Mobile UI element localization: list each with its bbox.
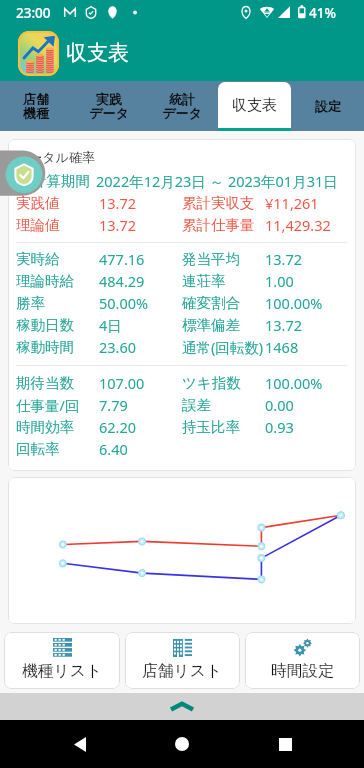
staticText: 確変割合: [182, 294, 240, 312]
staticText: 店舗リスト: [142, 661, 223, 681]
staticText: 1468: [265, 337, 299, 357]
staticText: 機種リスト: [22, 661, 103, 681]
staticText: 107.00: [99, 373, 145, 393]
staticText: 設定: [315, 98, 341, 114]
staticText: 理論値: [16, 216, 60, 234]
staticText: 実践 データ: [89, 91, 129, 122]
staticText: 通常(回転数): [182, 337, 264, 357]
staticText: 13.72: [99, 193, 137, 213]
staticText: 発当平均: [182, 250, 240, 268]
staticText: 実時給: [16, 250, 60, 268]
staticText: 計算期間: [32, 172, 90, 190]
staticText: 100.00%: [265, 373, 323, 393]
button[interactable]: 機種リスト: [4, 632, 120, 689]
staticText: 13.72: [265, 249, 303, 269]
staticText: 収支表: [232, 96, 277, 115]
staticText: 誤差: [182, 396, 211, 414]
staticText: 回転率: [16, 440, 60, 458]
button[interactable]: Recent apps: [262, 721, 308, 767]
staticText: 持玉比率: [182, 418, 240, 436]
staticText: 13.72: [99, 215, 137, 235]
button[interactable]: Home: [159, 721, 205, 767]
staticText: 時間設定: [271, 661, 335, 681]
staticText: 累計仕事量: [182, 216, 255, 234]
staticText: 0.93: [265, 417, 294, 437]
staticText: 実践値: [16, 194, 60, 212]
staticText: 0.00: [265, 395, 294, 415]
staticText: 23:00: [16, 4, 51, 22]
button[interactable]: 収支表: [218, 81, 291, 131]
staticText: 50.00%: [99, 293, 149, 313]
staticText: 仕事量/回: [16, 395, 80, 415]
button[interactable]: 時間設定: [245, 632, 360, 689]
button[interactable]: 統計 データ: [145, 81, 218, 131]
staticText: 41%: [309, 4, 336, 22]
staticText: 23.60: [99, 337, 137, 357]
button[interactable]: Back: [57, 721, 103, 767]
staticText: 484.29: [99, 271, 145, 291]
staticText: 2022年12月23日 ～ 2023年01月31日: [96, 171, 338, 191]
staticText: 期待当数: [16, 374, 74, 392]
staticText: 6.40: [99, 439, 128, 459]
staticText: 62.20: [99, 417, 137, 437]
staticText: 稼動時間: [16, 338, 74, 356]
staticText: ¥11,261: [265, 193, 319, 213]
staticText: 理論時給: [16, 272, 74, 290]
staticText: 11,429.32: [265, 215, 331, 235]
staticText: 稼動日数: [16, 316, 74, 334]
button[interactable]: 設定: [291, 81, 364, 131]
button[interactable]: 店舗リスト: [125, 632, 240, 689]
staticText: 統計 データ: [162, 91, 202, 122]
staticText: ツキ指数: [182, 374, 241, 392]
staticText: 標準偏差: [182, 316, 240, 334]
button[interactable]: 店舗 機種: [0, 81, 72, 131]
staticText: 店舗 機種: [23, 91, 49, 122]
staticText: 13.72: [265, 315, 303, 335]
staticText: 7.79: [99, 395, 128, 415]
staticText: 4日: [99, 315, 122, 335]
staticText: 勝率: [16, 294, 45, 312]
staticText: トータル確率: [16, 149, 95, 165]
button[interactable]: 実践 データ: [72, 81, 145, 131]
staticText: 100.00%: [265, 293, 323, 313]
staticText: 累計実収支: [182, 194, 255, 212]
staticText: 1.00: [265, 271, 294, 291]
staticText: 時間効率: [16, 418, 74, 436]
staticText: 収支表: [66, 40, 129, 66]
staticText: 連荘率: [182, 272, 226, 290]
staticText: 477.16: [99, 249, 145, 269]
